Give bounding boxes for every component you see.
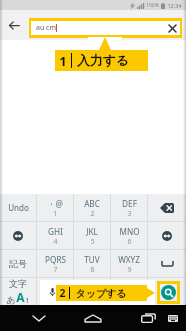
staticText: 6 xyxy=(127,237,132,247)
button[interactable]: JKL xyxy=(74,222,110,249)
button[interactable]: WXYZ xyxy=(111,250,147,277)
staticText: タップする xyxy=(75,287,127,300)
staticText: ・@ xyxy=(47,198,63,209)
button[interactable]: DEF xyxy=(111,194,147,221)
staticText: au cm xyxy=(36,23,56,33)
staticText: 、。?! xyxy=(118,282,141,293)
button[interactable]: ・@ xyxy=(37,194,73,221)
staticText: 文字 xyxy=(9,278,27,289)
staticText: 記号 xyxy=(9,258,27,269)
staticText: A xyxy=(16,289,25,305)
button[interactable]: Home xyxy=(80,305,106,331)
staticText: 1 xyxy=(25,295,30,305)
button[interactable]: ABC xyxy=(74,194,110,221)
button[interactable] xyxy=(0,222,36,249)
button[interactable]: TUV xyxy=(74,250,110,277)
button[interactable]: au cm xyxy=(31,21,180,35)
button[interactable] xyxy=(148,250,186,277)
staticText: 3 xyxy=(127,209,132,219)
staticText: ABC xyxy=(84,198,100,209)
button[interactable]: 記号 xyxy=(0,250,36,277)
button[interactable]: Clear text xyxy=(166,22,178,34)
button[interactable]: Undo xyxy=(0,194,36,221)
staticText: 8 xyxy=(90,265,95,275)
staticText: MNO xyxy=(119,226,140,237)
staticText: あ xyxy=(6,294,16,305)
staticText: JKL xyxy=(86,226,98,237)
staticText: 9 xyxy=(127,265,132,275)
button[interactable]: MNO xyxy=(111,222,147,249)
staticText: GHI xyxy=(48,226,63,237)
staticText: WXYZ xyxy=(118,254,140,265)
button[interactable]: Back xyxy=(3,14,25,36)
staticText: 1 xyxy=(53,209,58,219)
staticText: 5 xyxy=(90,237,95,247)
button[interactable] xyxy=(37,278,73,305)
button[interactable]: Recent apps xyxy=(135,305,161,331)
button[interactable]: 、。?! xyxy=(111,278,147,305)
button[interactable]: わをん xyxy=(74,278,110,305)
button[interactable]: Back xyxy=(26,305,52,331)
button[interactable] xyxy=(148,222,186,249)
staticText: 100% xyxy=(146,2,159,9)
button[interactable]: GHI xyxy=(37,222,73,249)
staticText: わをん xyxy=(79,283,105,293)
button[interactable] xyxy=(148,194,186,221)
staticText: 2 xyxy=(90,209,95,219)
button[interactable]: Keyboard xyxy=(160,305,186,331)
staticText: 0 xyxy=(90,293,95,303)
staticText: 7 xyxy=(53,265,58,275)
staticText: TUV xyxy=(84,254,100,265)
staticText: DEF xyxy=(122,198,137,209)
staticText: Undo xyxy=(8,202,29,213)
staticText: 1 xyxy=(59,52,67,70)
staticText: 入力する xyxy=(77,53,129,69)
staticText: 12:34 xyxy=(167,2,182,9)
button[interactable]: Search xyxy=(161,285,176,300)
button[interactable]: PQRS xyxy=(37,250,73,277)
button[interactable]: 文字 xyxy=(0,278,36,305)
staticText: 2 xyxy=(59,286,66,300)
staticText: PQRS xyxy=(45,254,66,265)
staticText: 4 xyxy=(53,237,58,247)
